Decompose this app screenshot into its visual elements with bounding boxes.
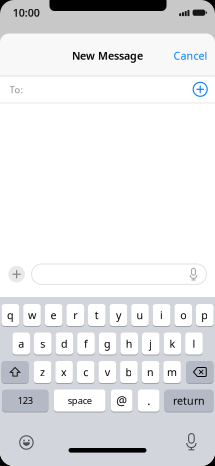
staticText: q — [7, 308, 14, 322]
staticText: u — [136, 308, 143, 322]
button[interactable]: m — [163, 360, 181, 383]
button[interactable]: q — [2, 303, 19, 326]
button[interactable]: c — [77, 360, 94, 383]
staticText: t — [95, 308, 99, 322]
button[interactable]: d — [56, 332, 73, 355]
button[interactable]: h — [120, 332, 138, 355]
button[interactable]: Dictation — [184, 433, 198, 451]
button[interactable]: r — [66, 303, 84, 326]
staticText: 123 — [18, 394, 33, 407]
button[interactable]: p — [196, 303, 214, 326]
staticText: j — [149, 336, 152, 351]
staticText: a — [18, 336, 24, 351]
staticText: y — [116, 308, 121, 322]
staticText: f — [84, 336, 88, 351]
button[interactable]: Add Contact — [193, 82, 208, 97]
button[interactable]: u — [131, 303, 149, 326]
staticText: e — [51, 308, 57, 322]
staticText: b — [125, 365, 132, 379]
staticText: Cancel — [173, 48, 207, 63]
button[interactable]: e — [45, 303, 62, 326]
button[interactable]: b — [120, 360, 138, 383]
staticText: i — [160, 308, 163, 322]
button[interactable]: j — [142, 332, 160, 355]
staticText: r — [73, 308, 77, 322]
button[interactable]: return — [164, 389, 213, 412]
staticText: New Message — [72, 48, 143, 63]
staticText: @ — [116, 392, 127, 408]
button[interactable]: Add attachment — [8, 266, 25, 283]
button[interactable]: a — [12, 332, 30, 355]
button[interactable]: w — [23, 303, 41, 326]
button[interactable]: y — [110, 303, 127, 326]
staticText: p — [201, 308, 208, 322]
button[interactable]: s — [34, 332, 52, 355]
button[interactable]: n — [142, 360, 159, 383]
staticText: w — [28, 308, 36, 322]
staticText: v — [105, 365, 110, 379]
staticText: z — [40, 365, 45, 379]
staticText: return — [173, 393, 205, 408]
staticText: n — [147, 365, 154, 379]
button[interactable]: . — [138, 389, 159, 412]
button[interactable]: Emoji — [18, 434, 34, 450]
staticText: space — [68, 394, 92, 407]
staticText: m — [167, 365, 177, 379]
button[interactable]: o — [174, 303, 192, 326]
button[interactable]: Shift — [1, 360, 29, 383]
staticText: x — [61, 365, 67, 379]
button[interactable]: @ — [111, 389, 132, 412]
button[interactable]: z — [34, 360, 51, 383]
button[interactable]: l — [185, 332, 203, 355]
button[interactable]: g — [99, 332, 116, 355]
button[interactable]: Cancel — [173, 48, 207, 63]
staticText: g — [104, 336, 111, 351]
staticText: l — [192, 336, 195, 351]
button[interactable]: 123 — [2, 389, 48, 412]
button[interactable]: f — [77, 332, 95, 355]
button[interactable]: space — [54, 389, 105, 412]
staticText: s — [40, 336, 45, 351]
staticText: o — [180, 308, 186, 322]
staticText: c — [83, 365, 88, 379]
button[interactable]: t — [88, 303, 106, 326]
button[interactable]: i — [153, 303, 170, 326]
staticText: k — [169, 336, 175, 351]
staticText: h — [126, 336, 133, 351]
staticText: . — [147, 392, 150, 408]
staticText: 10:00 — [13, 6, 40, 20]
button[interactable]: Delete — [186, 360, 213, 383]
button[interactable]: v — [98, 360, 116, 383]
button[interactable]: k — [164, 332, 181, 355]
button[interactable]: Dictate — [186, 266, 200, 282]
staticText: To: — [9, 83, 23, 96]
button[interactable]: x — [55, 360, 73, 383]
staticText: d — [61, 336, 68, 351]
